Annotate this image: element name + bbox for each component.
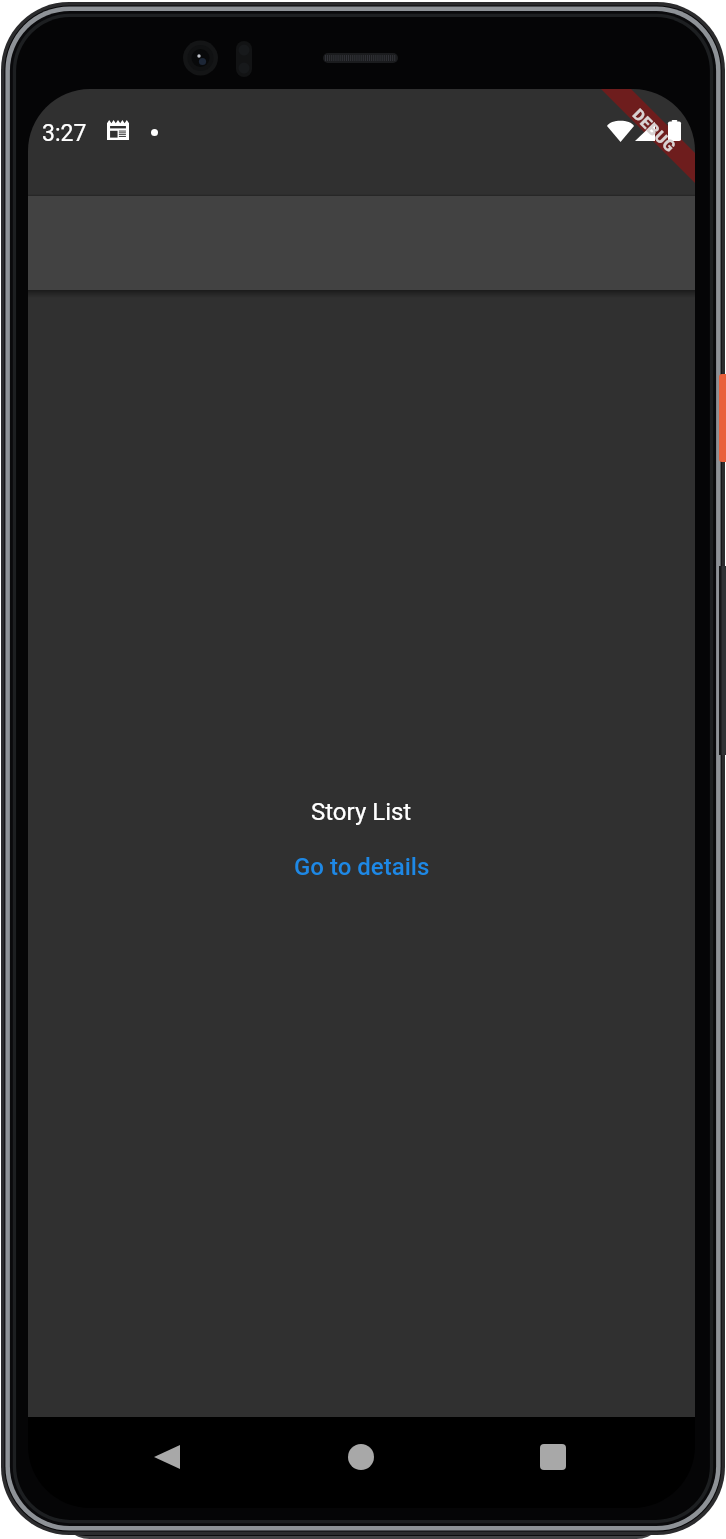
- staticText: Go to details: [294, 853, 430, 881]
- staticText: DEBUG: [629, 105, 680, 157]
- button[interactable]: Home: [327, 1423, 395, 1491]
- button[interactable]: Go to details: [280, 839, 444, 895]
- staticText: Story List: [311, 798, 412, 826]
- button[interactable]: Recent apps: [519, 1423, 587, 1491]
- staticText: 3:27: [42, 120, 87, 147]
- button[interactable]: Back: [133, 1423, 201, 1491]
